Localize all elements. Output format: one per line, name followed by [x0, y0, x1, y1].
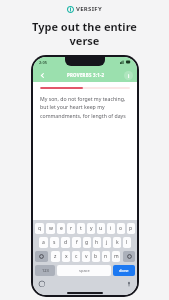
staticText: done [119, 268, 129, 273]
button[interactable]: v [82, 251, 90, 262]
staticText: f [76, 239, 78, 246]
button[interactable]: p [127, 223, 135, 234]
button[interactable]: u [97, 223, 105, 234]
staticText: VERSIFY [76, 5, 102, 13]
staticText: r [70, 225, 73, 232]
button[interactable]: s [50, 237, 59, 248]
button[interactable]: l [123, 237, 131, 248]
staticText: t [80, 225, 82, 232]
staticText: u [99, 225, 103, 232]
staticText: c [75, 253, 78, 260]
staticText: q [38, 225, 42, 232]
button[interactable]: done [113, 265, 135, 276]
button[interactable]: i [107, 223, 115, 234]
button[interactable]: a [39, 237, 48, 248]
button[interactable]: o [117, 223, 125, 234]
staticText: o [119, 225, 123, 232]
button[interactable]: w [46, 223, 55, 234]
button[interactable]: space [57, 265, 111, 276]
button[interactable]: Dictation [125, 280, 132, 287]
staticText: n [104, 253, 108, 260]
button[interactable]: Info [124, 71, 133, 80]
staticText: 2:05 [39, 60, 47, 65]
staticText: s [53, 239, 56, 246]
staticText: p [129, 225, 133, 232]
staticText: g [85, 239, 89, 246]
staticText: b [94, 253, 98, 260]
button[interactable]: f [72, 237, 81, 248]
staticText: h [95, 239, 99, 246]
button[interactable]: Delete [123, 251, 135, 262]
staticText: a [42, 239, 45, 246]
staticText: e [60, 225, 63, 232]
button[interactable]: 123 [35, 265, 55, 276]
staticText: My son, do not forget my teaching, but l… [40, 95, 130, 119]
button[interactable]: k [113, 237, 121, 248]
button[interactable]: j [103, 237, 111, 248]
staticText: space [79, 268, 90, 273]
staticText: j [106, 239, 108, 246]
button[interactable]: Shift [35, 251, 48, 262]
button[interactable]: x [62, 251, 70, 262]
button[interactable]: t [77, 223, 85, 234]
button[interactable]: q [35, 223, 44, 234]
staticText: l [126, 239, 128, 246]
button[interactable]: g [83, 237, 91, 248]
staticText: z [54, 253, 57, 260]
button[interactable]: r [67, 223, 75, 234]
staticText: i [110, 225, 112, 232]
staticText: Type out the entire verse [32, 19, 137, 48]
button[interactable]: c [72, 251, 80, 262]
staticText: d [64, 239, 68, 246]
staticText: k [116, 239, 119, 246]
button[interactable]: b [92, 251, 100, 262]
staticText: v [85, 253, 88, 260]
staticText: x [65, 253, 68, 260]
button[interactable]: h [93, 237, 101, 248]
button[interactable]: d [61, 237, 70, 248]
staticText: i [128, 73, 130, 79]
button[interactable]: z [51, 251, 60, 262]
staticText: 123 [42, 268, 49, 273]
button[interactable]: y [87, 223, 95, 234]
button[interactable]: e [57, 223, 65, 234]
staticText: y [90, 225, 93, 232]
staticText: w [49, 225, 53, 232]
button[interactable]: Emoji [38, 280, 45, 287]
staticText: PROVERBS 3:1-2 [67, 72, 105, 78]
staticText: m [114, 253, 119, 260]
button[interactable]: Back [37, 70, 48, 81]
button[interactable]: n [102, 251, 110, 262]
button[interactable]: m [112, 251, 120, 262]
